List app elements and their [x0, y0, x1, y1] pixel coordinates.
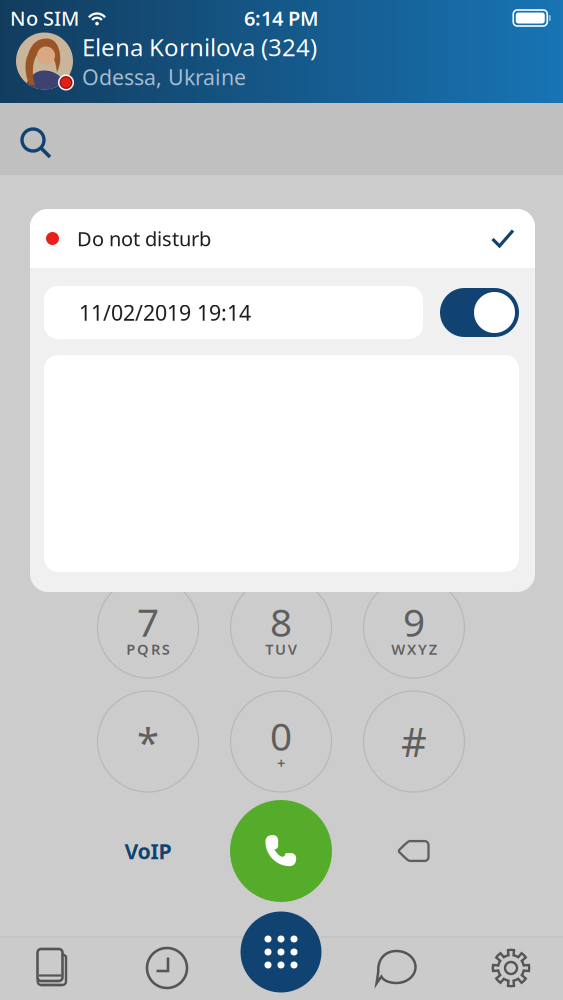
staticText: TUV: [265, 639, 297, 659]
staticText: 6:14 PM: [244, 5, 319, 31]
button[interactable]: Keypad: [238, 909, 324, 995]
staticText: Do not disturb: [77, 225, 211, 252]
staticText: WXYZ: [391, 639, 437, 659]
staticText: No SIM: [10, 5, 79, 31]
staticText: Elena Kornilova (324): [82, 31, 317, 63]
button[interactable]: Call: [226, 796, 336, 906]
staticText: 7: [137, 596, 159, 647]
button[interactable]: Settings: [476, 940, 546, 996]
staticText: +: [277, 753, 285, 773]
button[interactable]: 7: [92, 571, 204, 683]
staticText: Odessa, Ukraine: [82, 63, 246, 91]
button[interactable]: *: [92, 685, 204, 797]
staticText: PQRS: [126, 639, 170, 659]
staticText: VoIP: [124, 837, 171, 865]
button[interactable]: #: [358, 685, 470, 797]
button[interactable]: Delete: [359, 806, 469, 896]
staticText: 11/02/2019 19:14: [79, 298, 251, 327]
button[interactable]: VoIP: [93, 806, 203, 896]
button[interactable]: Contacts: [17, 940, 87, 996]
button[interactable]: Search: [0, 103, 563, 175]
button[interactable]: 0: [225, 685, 337, 797]
staticText: 0: [270, 710, 292, 761]
staticText: #: [401, 715, 427, 768]
button[interactable]: 9: [358, 571, 470, 683]
button[interactable]: 8: [225, 571, 337, 683]
button[interactable]: Do not disturb toggle: [440, 288, 519, 337]
staticText: 8: [270, 596, 292, 647]
button[interactable]: Recents: [132, 940, 202, 996]
button[interactable]: Messages: [361, 940, 431, 996]
staticText: *: [137, 715, 159, 768]
staticText: 9: [403, 596, 425, 647]
